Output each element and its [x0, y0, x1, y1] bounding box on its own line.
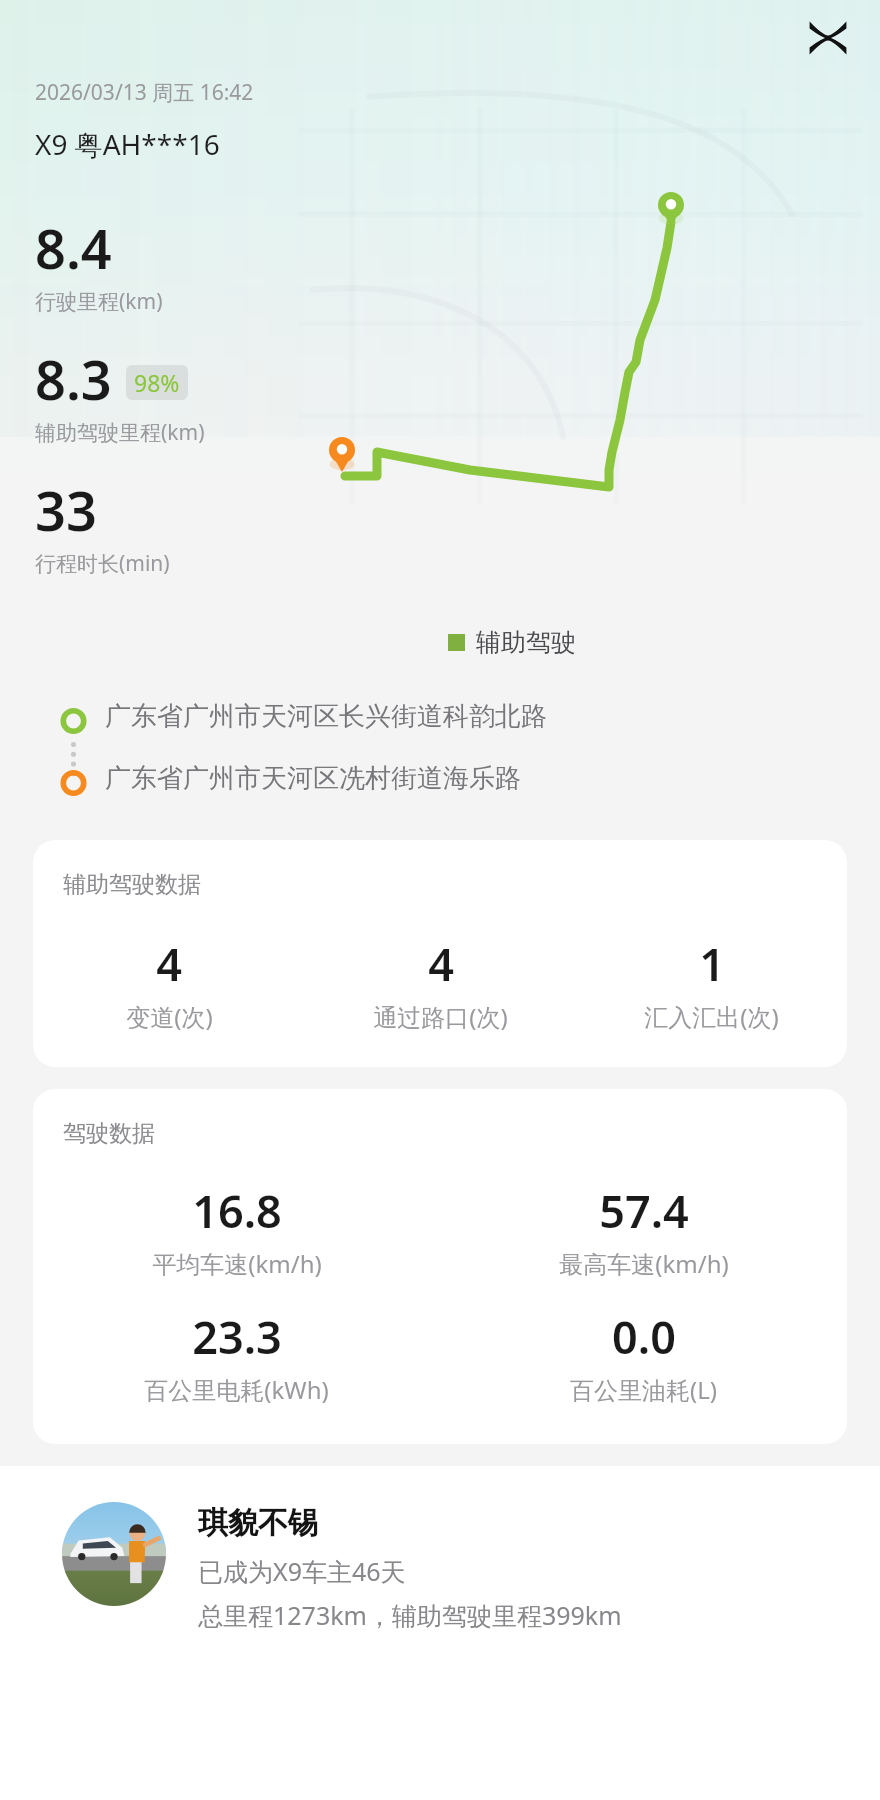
staticText: 行程时长(min): [35, 549, 170, 578]
staticText: 行驶里程(km): [35, 287, 163, 316]
staticText: 4: [156, 933, 182, 994]
staticText: 33: [35, 473, 97, 547]
staticText: 2026/03/13 周五 16:42: [35, 78, 254, 107]
staticText: 已成为X9车主46天: [198, 1554, 406, 1588]
staticText: 98%: [134, 367, 180, 398]
staticText: 辅助驾驶数据: [63, 870, 201, 899]
staticText: X9 粤AH***16: [35, 125, 220, 163]
staticText: 23.3: [192, 1306, 282, 1367]
staticText: 通过路口(次): [373, 1000, 508, 1033]
staticText: 广东省广州市天河区冼村街道海乐路: [105, 762, 521, 795]
staticText: 总里程1273km，辅助驾驶里程399km: [198, 1598, 622, 1632]
button[interactable]: 1: [576, 933, 847, 1033]
button[interactable]: 4: [305, 933, 576, 1033]
staticText: 百公里电耗(kWh): [144, 1373, 329, 1406]
button[interactable]: 0.0: [440, 1306, 847, 1406]
button[interactable]: 4: [33, 933, 305, 1033]
staticText: 0.0: [612, 1306, 676, 1367]
button[interactable]: 琪貌不锡: [0, 1466, 880, 1800]
staticText: 变道(次): [126, 1000, 213, 1033]
staticText: 驾驶数据: [63, 1119, 155, 1148]
button[interactable]: Close: [796, 6, 860, 70]
button[interactable]: 驾驶数据: [33, 1089, 847, 1444]
staticText: 琪貌不锡: [198, 1504, 318, 1542]
staticText: 最高车速(km/h): [559, 1247, 729, 1280]
staticText: 辅助驾驶: [476, 627, 576, 658]
staticText: 平均车速(km/h): [152, 1247, 322, 1280]
staticText: 57.4: [599, 1180, 689, 1241]
staticText: 16.8: [192, 1180, 282, 1241]
staticText: 百公里油耗(L): [570, 1373, 717, 1406]
staticText: 8.4: [35, 211, 112, 285]
staticText: 汇入汇出(次): [644, 1000, 779, 1033]
button[interactable]: 辅助驾驶数据: [33, 840, 847, 1067]
staticText: 4: [428, 933, 454, 994]
button[interactable]: 57.4: [440, 1180, 847, 1280]
staticText: 1: [699, 933, 725, 994]
button[interactable]: 广东省广州市天河区长兴街道科韵北路: [0, 700, 880, 762]
button[interactable]: 广东省广州市天河区冼村街道海乐路: [0, 762, 880, 824]
staticText: 8.3: [35, 342, 112, 416]
button[interactable]: 16.8: [33, 1180, 440, 1280]
button[interactable]: 23.3: [33, 1306, 440, 1406]
staticText: 广东省广州市天河区长兴街道科韵北路: [105, 700, 547, 733]
staticText: 辅助驾驶里程(km): [35, 418, 205, 447]
